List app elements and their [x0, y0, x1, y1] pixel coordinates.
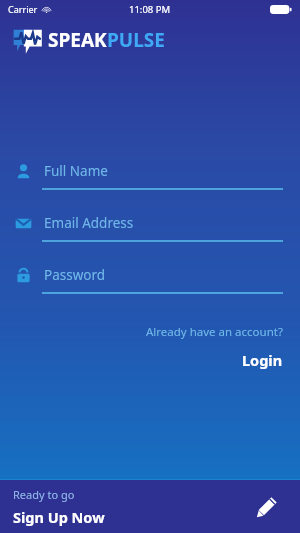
staticText: Login: [242, 350, 283, 370]
button[interactable]: Email Address: [0, 214, 300, 242]
button[interactable]: SPEAK: [13, 24, 300, 56]
staticText: PULSE: [107, 27, 165, 53]
staticText: Carrier: [8, 3, 38, 15]
button[interactable]: Sign Up: [250, 490, 284, 524]
staticText: Password: [44, 266, 106, 284]
button[interactable]: Password: [0, 266, 300, 294]
button[interactable]: Full Name: [0, 162, 300, 190]
staticText: SPEAK: [48, 27, 107, 53]
button[interactable]: Already have an account?: [0, 324, 300, 370]
staticText: Email Address: [44, 214, 134, 232]
button[interactable]: Ready to go: [0, 480, 300, 533]
staticText: Sign Up Now: [13, 507, 105, 527]
staticText: Full Name: [44, 162, 108, 180]
staticText: 11:08 PM: [129, 3, 171, 16]
staticText: Already have an account?: [146, 324, 283, 340]
staticText: Ready to go: [13, 487, 75, 502]
